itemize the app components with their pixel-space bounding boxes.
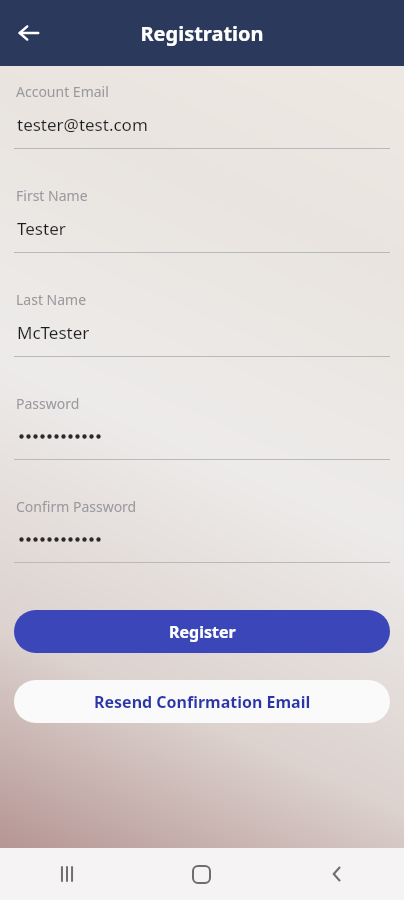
staticText: McTester bbox=[17, 321, 90, 344]
staticText: Resend Confirmation Email bbox=[94, 691, 311, 713]
staticText: Registration bbox=[140, 20, 264, 47]
button[interactable]: Register bbox=[14, 610, 390, 653]
staticText: Register bbox=[169, 621, 236, 643]
button[interactable]: Back bbox=[269, 848, 404, 900]
button[interactable]: Confirm Password bbox=[0, 497, 404, 563]
staticText: Tester bbox=[17, 217, 66, 240]
staticText: Password bbox=[16, 394, 80, 413]
staticText: tester@test.com bbox=[17, 113, 148, 136]
button[interactable]: Password bbox=[0, 394, 404, 460]
staticText: Account Email bbox=[16, 82, 109, 101]
button[interactable]: Account Email bbox=[0, 82, 404, 149]
button[interactable]: Back bbox=[8, 12, 50, 54]
button[interactable]: First Name bbox=[0, 186, 404, 253]
button[interactable]: Last Name bbox=[0, 290, 404, 357]
staticText: Confirm Password bbox=[16, 497, 137, 516]
button[interactable]: Recent apps bbox=[0, 848, 134, 900]
staticText: Last Name bbox=[16, 290, 87, 309]
button[interactable]: Resend Confirmation Email bbox=[14, 680, 390, 723]
staticText: First Name bbox=[16, 186, 88, 205]
button[interactable]: Home bbox=[134, 848, 269, 900]
